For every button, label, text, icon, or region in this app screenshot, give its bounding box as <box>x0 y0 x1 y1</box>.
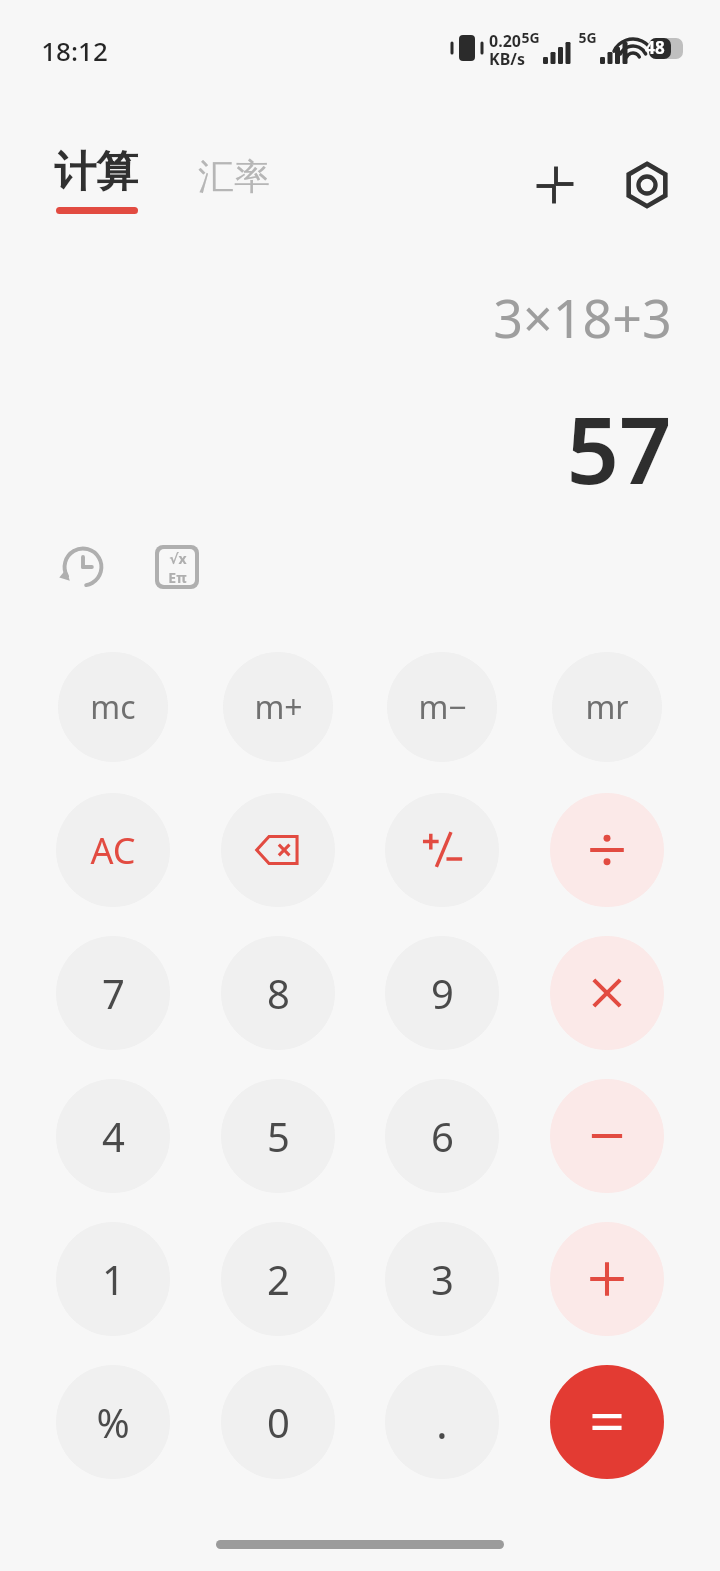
button[interactable]: History <box>50 534 116 600</box>
button[interactable]: mr <box>552 652 662 762</box>
staticText: 6 <box>431 1109 454 1163</box>
staticText: % <box>96 1395 130 1449</box>
staticText: 3 <box>431 1252 454 1306</box>
staticText: 5 <box>267 1109 290 1163</box>
button[interactable]: 2 <box>221 1222 335 1336</box>
button[interactable]: 5 <box>221 1079 335 1193</box>
button[interactable]: Backspace <box>221 793 335 907</box>
button[interactable]: 计算 <box>48 142 144 218</box>
button[interactable]: Scientific mode <box>521 151 589 219</box>
button[interactable]: 6 <box>385 1079 499 1193</box>
button[interactable]: mc <box>58 652 168 762</box>
staticText: KB/s <box>489 48 525 70</box>
staticText: Eπ <box>168 568 187 585</box>
button[interactable]: Scientific functions <box>144 534 210 600</box>
staticText: AC <box>90 826 136 875</box>
staticText: m+ <box>254 685 303 729</box>
staticText: 1 <box>102 1252 125 1306</box>
staticText: 5G <box>578 28 597 47</box>
button[interactable]: 4 <box>56 1079 170 1193</box>
staticText: 48 <box>645 36 665 59</box>
button[interactable]: 1 <box>56 1222 170 1336</box>
button[interactable]: 7 <box>56 936 170 1050</box>
button[interactable]: 3 <box>385 1222 499 1336</box>
staticText: 4 <box>102 1109 125 1163</box>
staticText: 8 <box>267 966 290 1020</box>
button[interactable]: Settings <box>612 150 682 220</box>
button[interactable]: m− <box>387 652 497 762</box>
button[interactable]: Equals <box>550 1365 664 1479</box>
staticText: 57 <box>566 386 672 511</box>
staticText: 2 <box>267 1252 290 1306</box>
staticText: mc <box>90 685 136 729</box>
button[interactable]: 8 <box>221 936 335 1050</box>
button[interactable]: % <box>56 1365 170 1479</box>
staticText: mr <box>585 685 629 729</box>
staticText: 18:12 <box>41 33 108 68</box>
button[interactable]: 9 <box>385 936 499 1050</box>
button[interactable]: 汇率 <box>190 148 278 205</box>
button[interactable]: Divide <box>550 793 664 907</box>
button[interactable]: . <box>385 1365 499 1479</box>
button[interactable]: m+ <box>223 652 333 762</box>
staticText: 汇率 <box>198 154 270 199</box>
staticText: 0 <box>267 1395 290 1449</box>
staticText: m− <box>418 685 467 729</box>
button[interactable]: Add <box>550 1222 664 1336</box>
button[interactable]: Toggle sign <box>385 793 499 907</box>
button[interactable]: Multiply <box>550 936 664 1050</box>
staticText: 9 <box>431 966 454 1020</box>
staticText: 3×18+3 <box>493 282 672 353</box>
button[interactable]: Subtract <box>550 1079 664 1193</box>
staticText: 5G <box>521 28 540 47</box>
staticText: 计算 <box>54 146 138 199</box>
staticText: . <box>436 1392 448 1452</box>
staticText: 7 <box>102 966 125 1020</box>
staticText: 0.20 <box>489 30 521 52</box>
staticText: √x <box>169 549 187 568</box>
button[interactable]: 0 <box>221 1365 335 1479</box>
button[interactable]: AC <box>56 793 170 907</box>
